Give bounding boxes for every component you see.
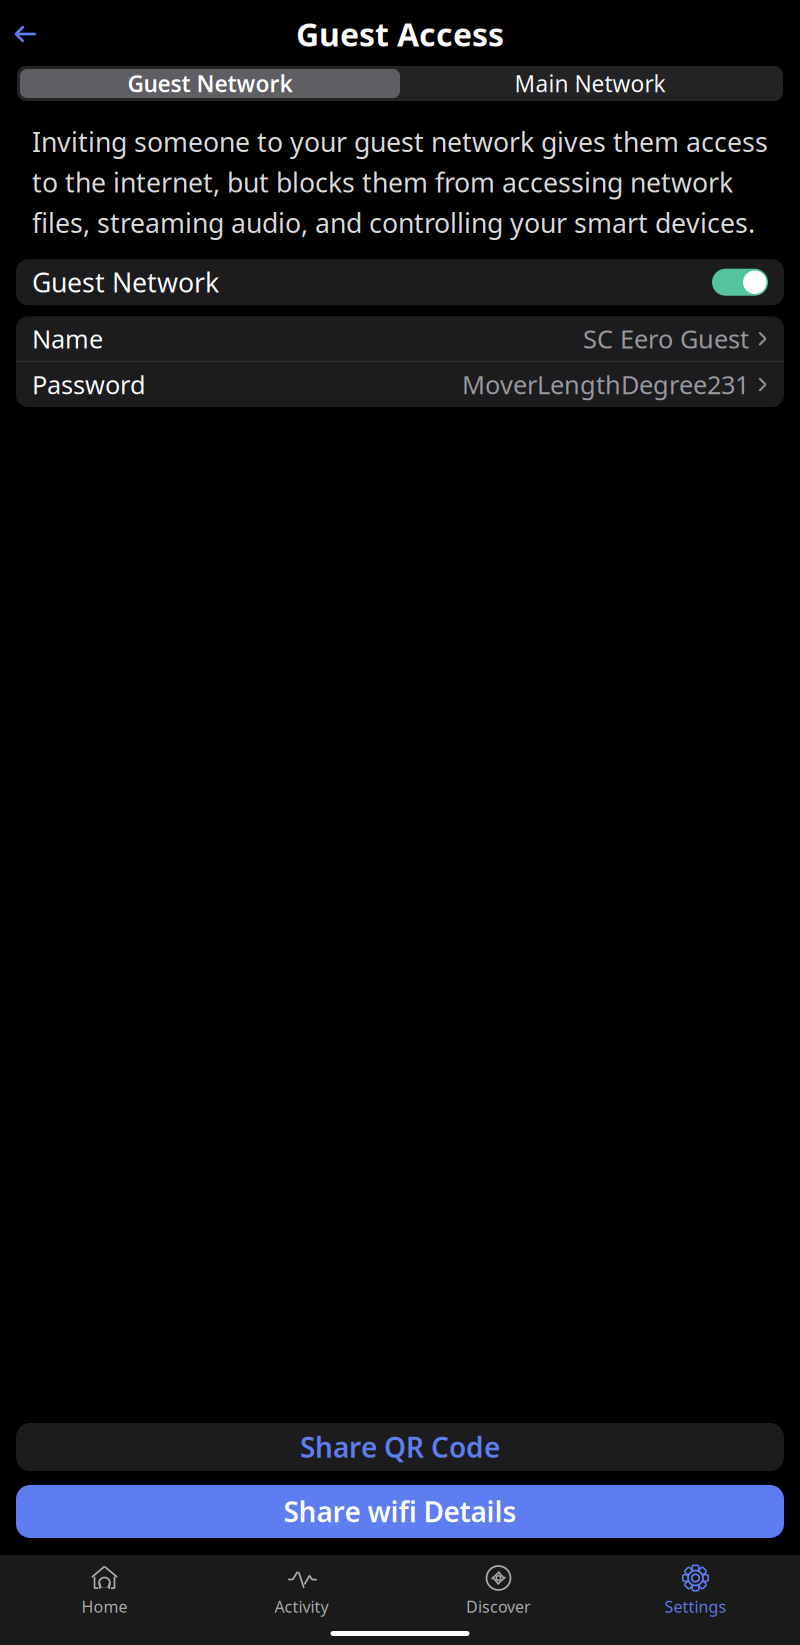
button[interactable]: Settings xyxy=(597,1555,794,1623)
staticText: Guest Network xyxy=(32,264,219,300)
staticText: Home xyxy=(81,1596,127,1617)
button[interactable]: Home xyxy=(6,1555,203,1623)
button[interactable]: Password xyxy=(16,362,784,407)
staticText: Share QR Code xyxy=(300,1428,500,1466)
button[interactable]: Share QR Code xyxy=(16,1423,784,1471)
staticText: Inviting someone to your guest network g… xyxy=(32,124,768,240)
staticText: Name xyxy=(32,322,103,355)
button[interactable]: Guest Network xyxy=(20,69,400,98)
button[interactable]: Back xyxy=(0,13,50,55)
staticText: Guest Network xyxy=(127,68,292,98)
button[interactable]: Share wifi Details xyxy=(16,1485,784,1538)
staticText: Activity xyxy=(274,1596,328,1617)
staticText: Guest Access xyxy=(296,13,504,55)
button[interactable]: Activity xyxy=(203,1555,400,1623)
staticText: SC Eero Guest xyxy=(583,322,749,355)
staticText: Main Network xyxy=(514,68,665,98)
button[interactable]: Main Network xyxy=(400,69,780,98)
staticText: Settings xyxy=(664,1596,726,1617)
staticText: Password xyxy=(32,368,146,401)
staticText: Discover xyxy=(466,1596,531,1617)
button[interactable]: Name xyxy=(16,316,784,361)
staticText: MoverLengthDegree231 xyxy=(462,368,749,401)
button[interactable]: Guest Network toggle xyxy=(712,269,768,296)
button[interactable]: Discover xyxy=(400,1555,597,1623)
staticText: Share wifi Details xyxy=(283,1493,516,1530)
